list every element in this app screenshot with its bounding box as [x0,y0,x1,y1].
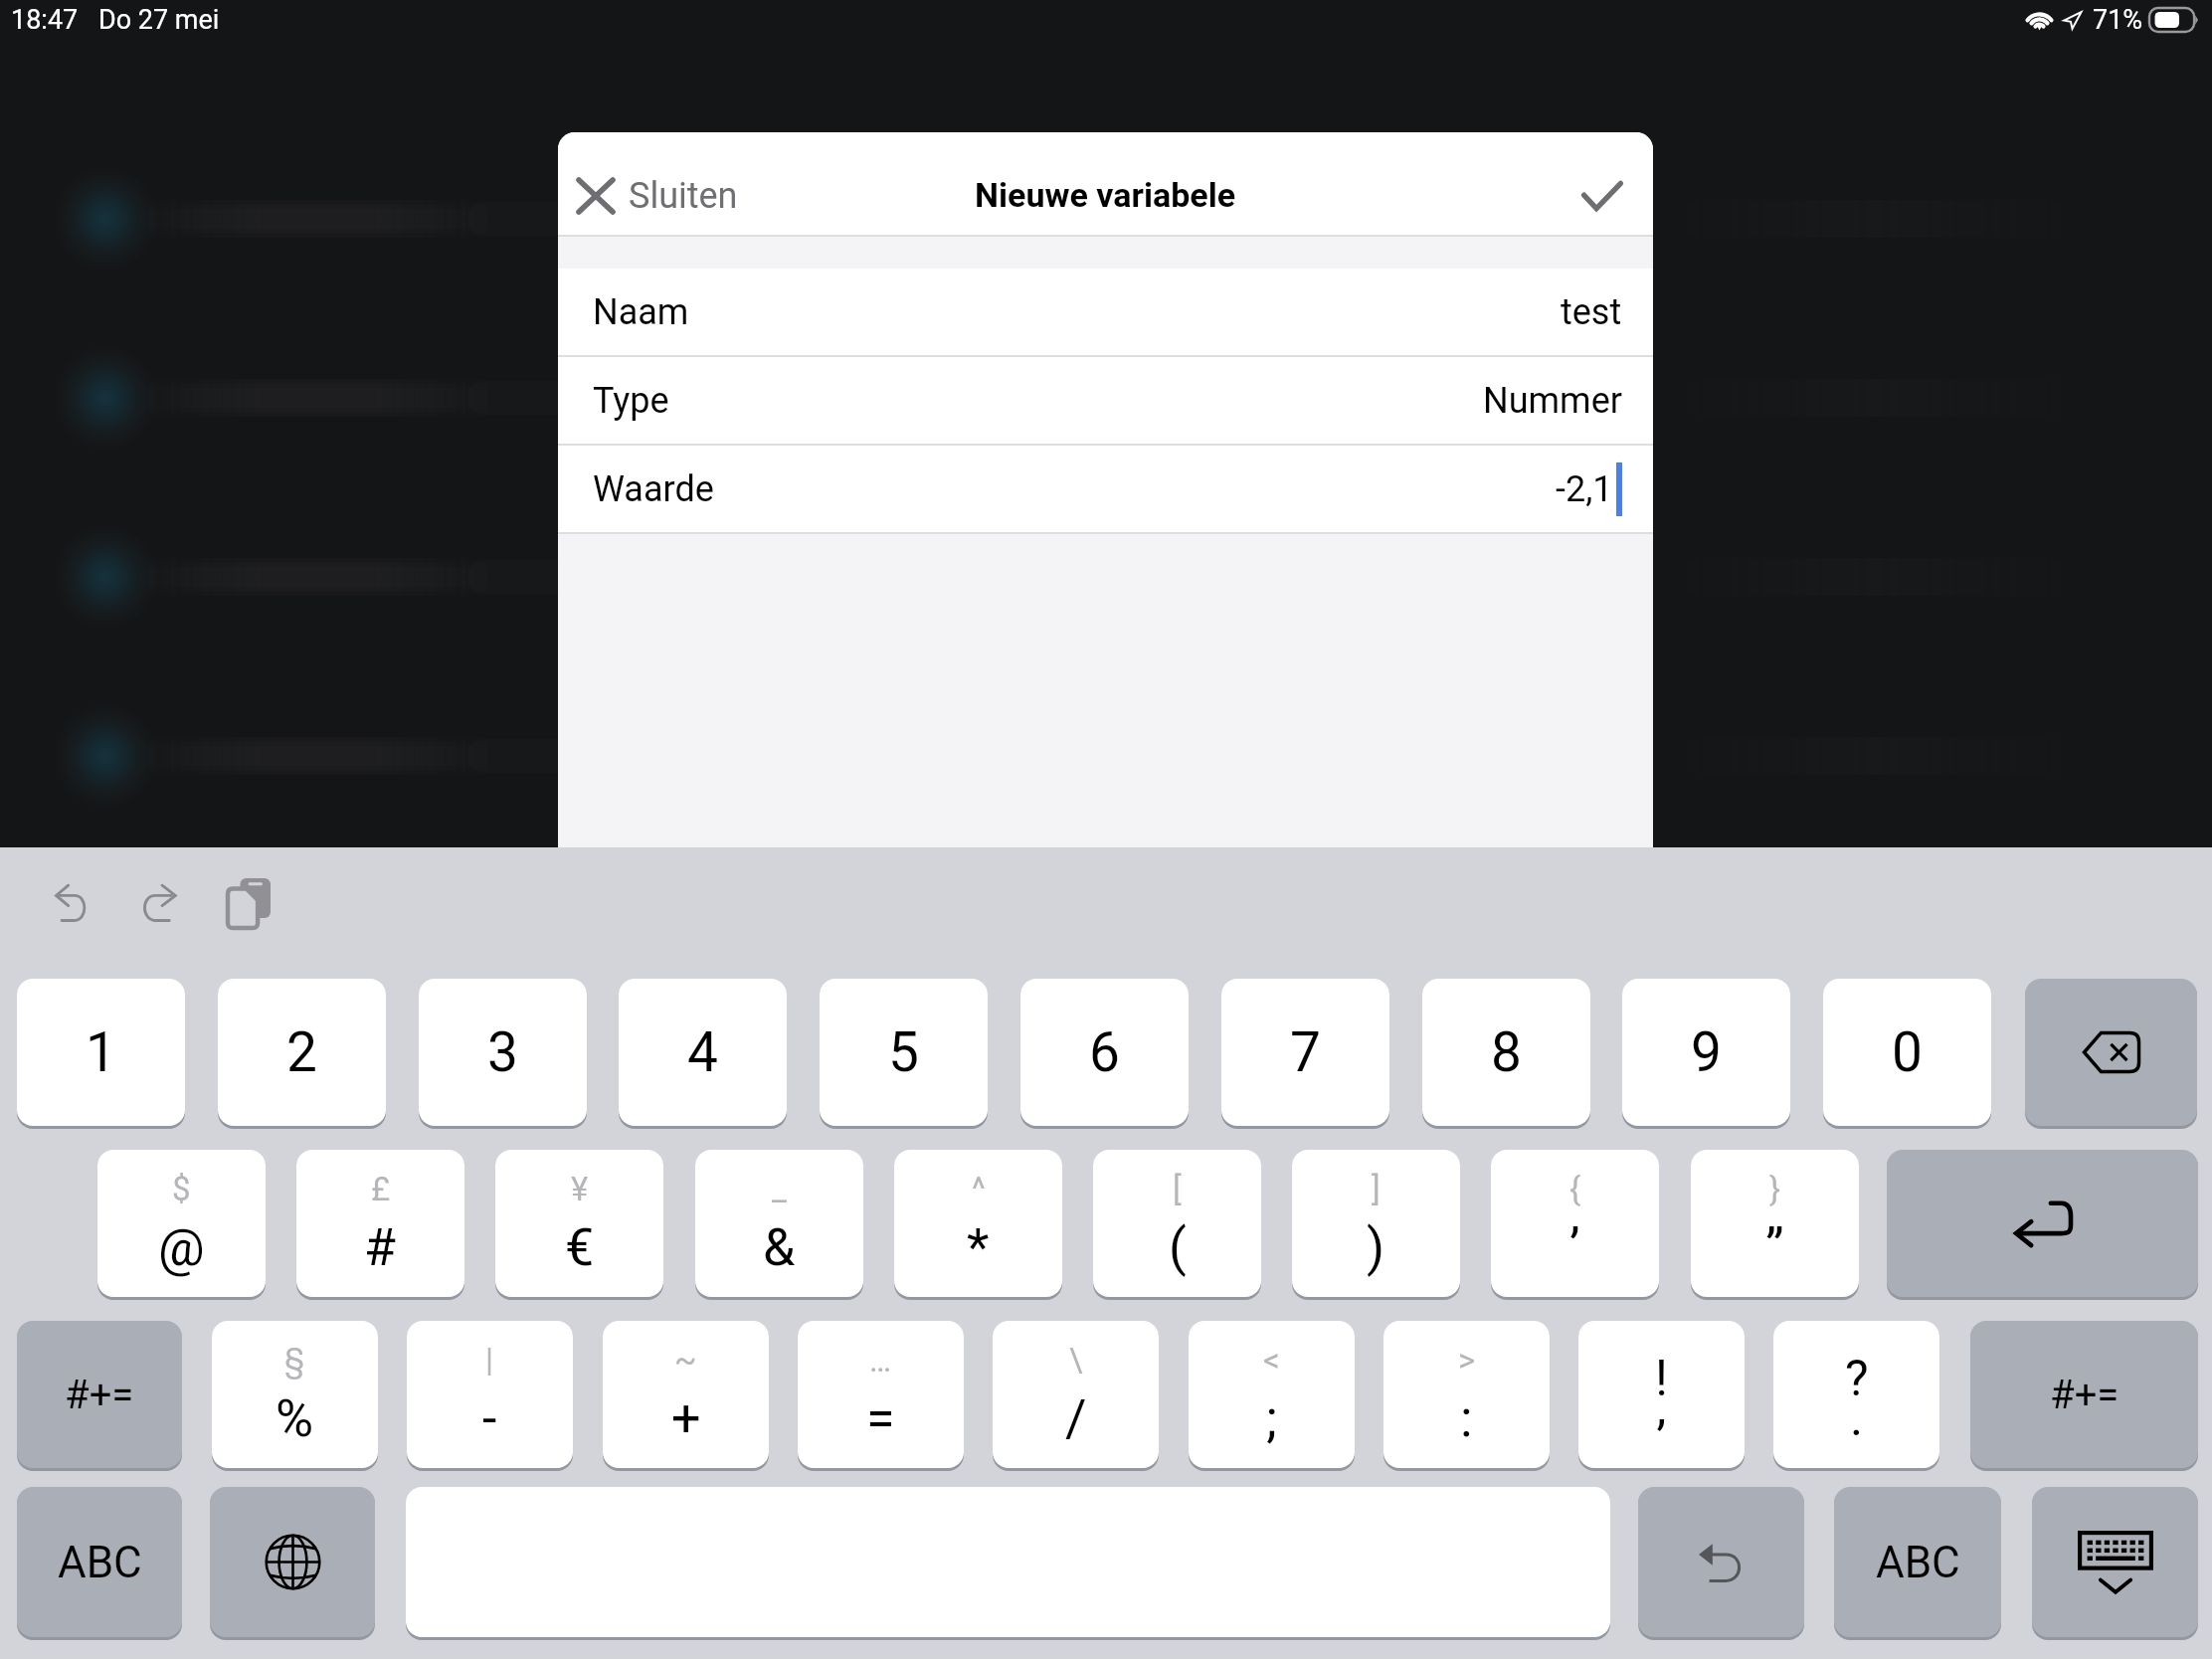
staticText: § [284,1341,305,1380]
button[interactable]: Hide keyboard [2032,1487,2198,1637]
staticText: Type [593,380,669,422]
staticText: 7 [1290,1020,1321,1084]
button[interactable]: ~ [603,1321,769,1468]
staticText: ^ [972,1170,986,1208]
staticText: ’ [1656,1411,1667,1468]
button[interactable]: 5 [820,979,988,1126]
staticText: test [1561,291,1622,333]
staticText: 9 [1691,1020,1722,1084]
staticText: Do 27 mei [98,4,220,36]
button[interactable]: Change keyboard language [210,1487,375,1637]
button[interactable]: Undo [1638,1487,1804,1637]
staticText: 71% [2093,4,2143,36]
staticText: = [866,1388,895,1449]
staticText: $ [172,1170,191,1208]
button[interactable]: ? [1773,1321,1939,1468]
staticText: ) [1367,1217,1385,1278]
button[interactable]: § [212,1321,378,1468]
staticText: 3 [487,1020,518,1084]
button[interactable]: Opslaan [1564,157,1641,235]
staticText: Nummer [1483,380,1622,422]
button[interactable]: < [1189,1321,1355,1468]
staticText: 6 [1089,1020,1120,1084]
staticText: \ [1069,1341,1083,1380]
button[interactable]: 8 [1422,979,1590,1126]
button[interactable]: _ [695,1150,863,1297]
staticText: & [763,1217,796,1278]
staticText: ? [1845,1350,1869,1408]
button[interactable]: 9 [1622,979,1790,1126]
staticText: { [1569,1170,1581,1208]
staticText: … [869,1341,892,1380]
button[interactable]: Type [558,357,1653,444]
staticText: ; [1266,1388,1277,1449]
button[interactable]: $ [97,1150,266,1297]
button[interactable]: Paste [202,852,296,954]
staticText: € [565,1217,595,1278]
staticText: [ [1173,1170,1182,1208]
staticText: Naam [593,291,689,333]
button[interactable]: 1 [17,979,185,1126]
button[interactable]: Backspace [2025,979,2197,1126]
button[interactable]: #+= [17,1321,182,1468]
staticText: 0 [1892,1020,1923,1084]
button[interactable]: { [1491,1150,1659,1297]
button[interactable]: ABC [1834,1487,2001,1637]
button[interactable]: 3 [419,979,587,1126]
staticText: Nieuwe variabele [975,175,1236,215]
button[interactable]: } [1691,1150,1859,1297]
button[interactable]: Undo [28,858,114,948]
staticText: 2 [286,1020,317,1084]
staticText: ! [1655,1350,1668,1408]
staticText: ” [1765,1217,1784,1278]
button[interactable]: 0 [1823,979,1991,1126]
staticText: | [485,1341,494,1380]
staticText: ’ [1569,1217,1580,1278]
staticText: ] [1372,1170,1381,1208]
button[interactable]: 4 [619,979,787,1126]
staticText: ¥ [571,1170,589,1208]
staticText: 5 [888,1020,919,1084]
button[interactable]: #+= [1970,1321,2198,1468]
button[interactable]: > [1383,1321,1550,1468]
staticText: Sluiten [629,175,738,217]
staticText: 4 [687,1020,718,1084]
staticText: > [1458,1341,1476,1380]
staticText: #+= [2050,1372,2120,1418]
button[interactable]: £ [296,1150,464,1297]
staticText: @ [158,1217,205,1278]
staticText: 1 [86,1020,116,1084]
staticText: } [1769,1170,1781,1208]
button[interactable]: Naam [558,269,1653,355]
staticText: # [364,1217,397,1278]
button[interactable]: Redo [114,858,204,948]
staticText: % [276,1388,314,1449]
staticText: - [482,1388,497,1449]
staticText: _ [772,1170,787,1208]
staticText: + [671,1388,701,1449]
button[interactable]: ^ [894,1150,1062,1297]
button[interactable]: ] [1292,1150,1460,1297]
staticText: -2,1 [1556,468,1613,510]
button[interactable]: Sluiten [569,157,748,235]
button[interactable]: 6 [1020,979,1189,1126]
button[interactable]: 7 [1221,979,1389,1126]
button[interactable]: ¥ [495,1150,663,1297]
button[interactable]: Return [1887,1150,2198,1297]
staticText: Waarde [593,468,714,510]
staticText: ~ [674,1341,697,1380]
button[interactable]: ABC [17,1487,182,1637]
staticText: #+= [65,1372,134,1418]
staticText: ( [1169,1217,1187,1278]
button[interactable]: | [407,1321,573,1468]
staticText: £ [371,1170,391,1208]
staticText: 8 [1491,1020,1522,1084]
button[interactable]: Waarde [558,446,1653,532]
button[interactable]: ! [1578,1321,1745,1468]
button[interactable]: [ [1093,1150,1261,1297]
button[interactable]: … [798,1321,964,1468]
button[interactable]: \ [993,1321,1159,1468]
staticText: < [1263,1341,1280,1380]
button[interactable]: 2 [218,979,386,1126]
